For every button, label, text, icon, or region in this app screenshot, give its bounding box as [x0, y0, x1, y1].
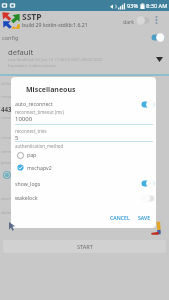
button[interactable]: SAVE: [132, 211, 156, 224]
staticText: remote_hostname: [1, 94, 38, 100]
staticText: authentication_method: [15, 143, 64, 149]
button[interactable]: More options: [151, 14, 161, 26]
staticText: remote_cert: [1, 149, 25, 155]
button[interactable]: [0, 43, 169, 73]
staticText: reconnect_tries: [15, 128, 47, 134]
staticText: dark: [123, 18, 135, 25]
staticText: detect: [1, 210, 14, 216]
staticText: SAVE: [138, 214, 151, 221]
button[interactable]: Switch on: [151, 33, 165, 42]
staticText: START: [77, 243, 93, 251]
staticText: SSTP: [22, 11, 42, 23]
staticText: pap: [27, 151, 37, 158]
button[interactable]: [11, 178, 156, 190]
staticText: wakelock: [15, 194, 38, 201]
staticText: counts: [1, 196, 15, 202]
staticText: mschapv2: [27, 164, 52, 171]
staticText: show_logs: [15, 180, 41, 187]
button[interactable]: Expand: [152, 52, 166, 66]
staticText: 93%: [127, 2, 139, 10]
button[interactable]: [11, 149, 156, 161]
staticText: auto_reconnect: [15, 100, 53, 107]
button[interactable]: Switch off: [136, 16, 150, 25]
button[interactable]: Switch on: [141, 100, 155, 109]
button[interactable]: [11, 162, 156, 174]
button[interactable]: [11, 98, 156, 110]
staticText: proxy: [1, 160, 13, 166]
staticText: config: [2, 34, 19, 42]
button[interactable]: CANCEL: [103, 211, 137, 224]
button[interactable]: Switch on: [141, 179, 155, 188]
staticText: Expiration: indeterminate: [8, 63, 56, 68]
staticText: reconnect_timeout (ms): [15, 109, 64, 115]
staticText: 5: [15, 134, 19, 142]
button[interactable]: Switch off: [141, 194, 155, 203]
button[interactable]: START: [3, 240, 166, 253]
staticText: remote_username: [1, 115, 38, 121]
staticText: 10000: [15, 115, 33, 123]
button[interactable]: [11, 192, 156, 204]
staticText: remote_password: [1, 135, 37, 141]
staticText: Miscellaneous: [26, 85, 76, 95]
staticText: CANCEL: [110, 214, 130, 221]
staticText: 443: [1, 105, 12, 113]
staticText: default: [1, 81, 15, 87]
staticText: default: [8, 47, 34, 57]
staticText: 8:30 AM: [146, 2, 168, 10]
staticText: Last Modified: Fri Jun 10 17:35:53 GMT+0…: [8, 57, 103, 62]
staticText: build 29 kotlin-stdlib:1.6.21: [22, 21, 88, 28]
